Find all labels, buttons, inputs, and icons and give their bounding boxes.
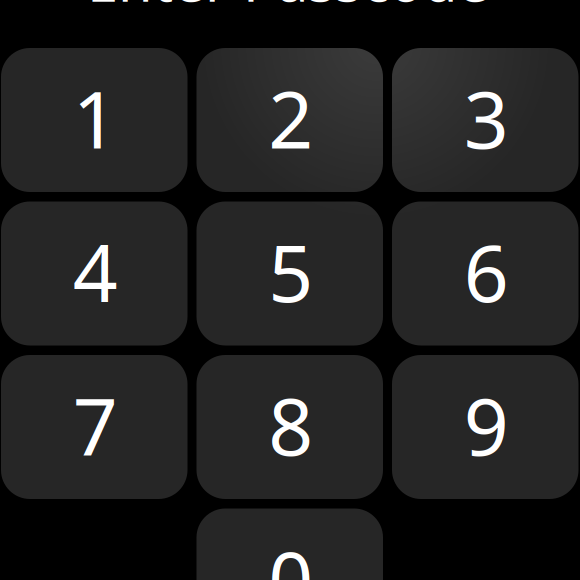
button[interactable]: 6 xyxy=(392,201,578,345)
staticText: 6 xyxy=(464,219,509,324)
staticText: 0 xyxy=(268,526,313,580)
staticText: 2 xyxy=(268,66,313,170)
button[interactable]: 5 xyxy=(196,201,383,345)
staticText: 4 xyxy=(73,219,118,324)
staticText: 1 xyxy=(73,66,118,170)
staticText: 3 xyxy=(464,66,509,170)
staticText: 9 xyxy=(464,373,509,477)
button[interactable]: 2 xyxy=(196,48,383,192)
button[interactable]: 7 xyxy=(1,355,187,499)
button[interactable]: 4 xyxy=(1,201,187,345)
button[interactable]: 8 xyxy=(196,355,383,499)
button[interactable]: 3 xyxy=(392,48,578,192)
button[interactable]: 9 xyxy=(392,355,578,499)
staticText: 5 xyxy=(268,219,313,324)
staticText: 7 xyxy=(73,373,118,477)
button[interactable]: 1 xyxy=(1,48,187,192)
staticText: 8 xyxy=(268,373,313,477)
staticText: Enter Passcode xyxy=(87,0,489,17)
button[interactable]: 0 xyxy=(196,508,383,580)
